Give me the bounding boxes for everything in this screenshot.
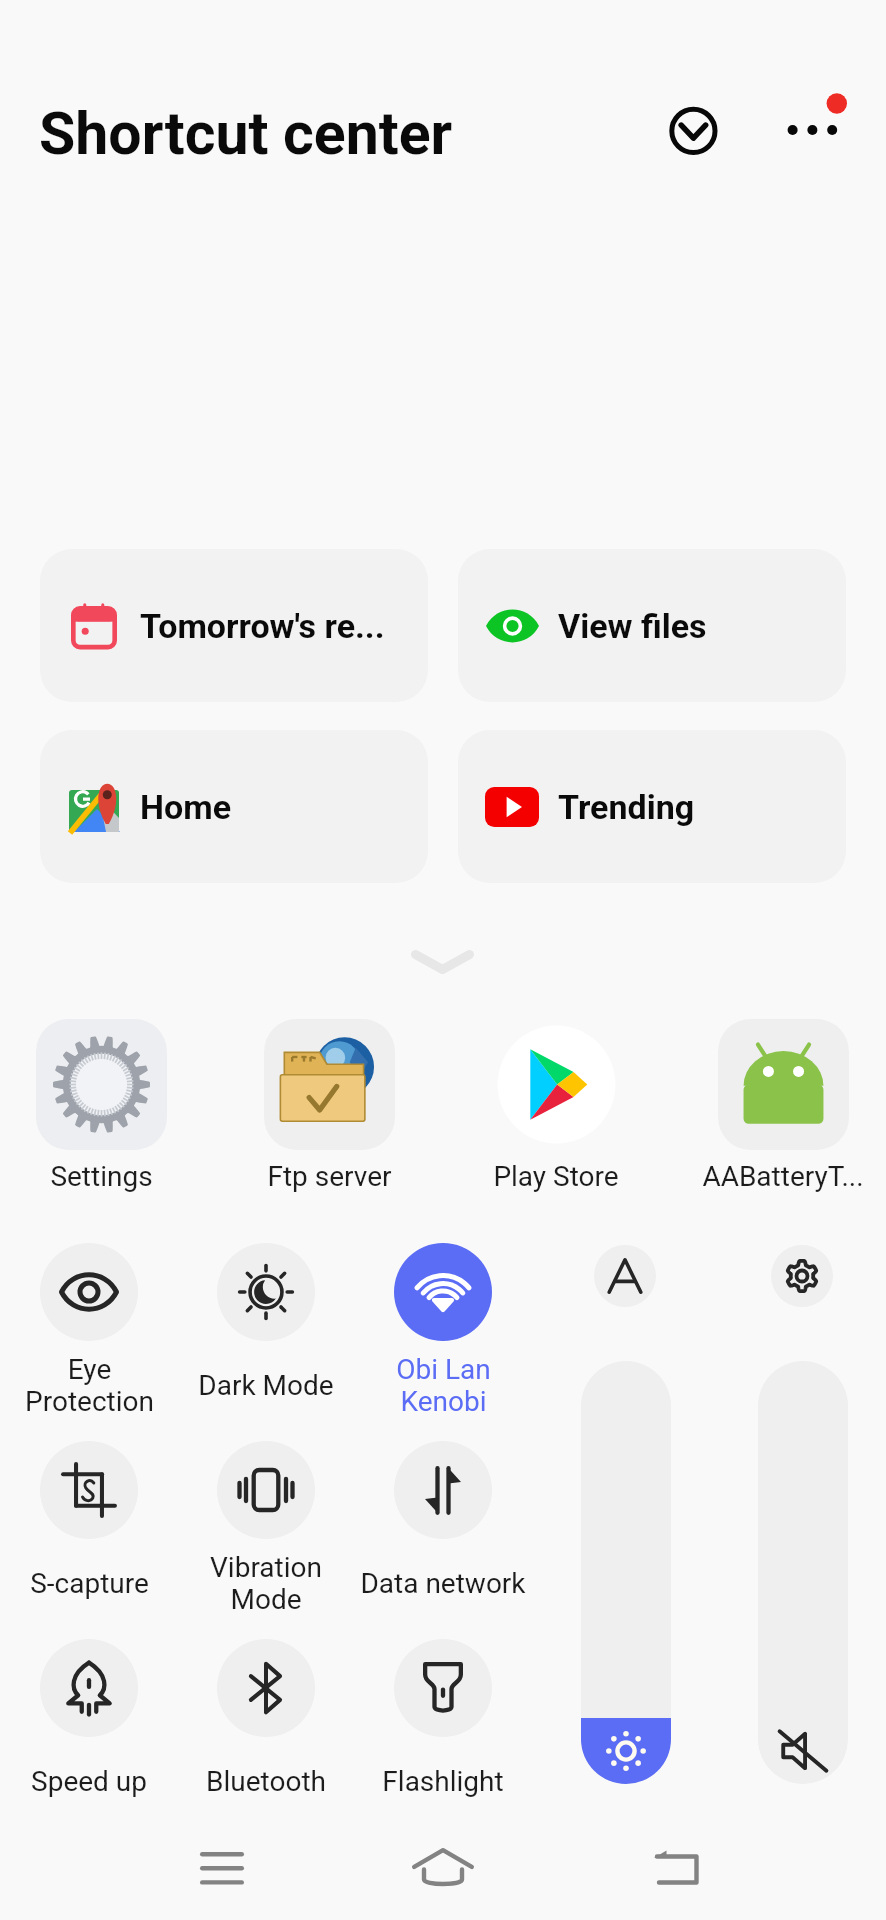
staticText: Home [140,787,232,827]
button[interactable]: Ftp server [219,1019,439,1193]
button[interactable]: Brightness [581,1361,671,1784]
button[interactable]: AABatteryT... [673,1019,886,1193]
button[interactable]: Home [40,730,428,883]
button[interactable]: Settings [0,1019,211,1193]
button[interactable]: Font size [594,1245,656,1307]
button[interactable]: Play Store [446,1019,666,1193]
button[interactable]: Volume [758,1361,848,1784]
staticText: Tomorrow's re... [140,606,385,646]
button[interactable]: Obi Lan Kenobi [353,1243,533,1409]
button[interactable]: Eye Protection [0,1243,179,1409]
button[interactable]: S-capture [0,1441,179,1607]
staticText: Vibration Mode [210,1551,322,1616]
staticText: AABatteryT... [702,1160,864,1193]
button[interactable]: Recents [172,1818,272,1918]
staticText: Settings [50,1160,153,1193]
button[interactable]: Flashlight [353,1639,533,1805]
staticText: Dark Mode [198,1369,334,1402]
staticText: Play Store [493,1160,619,1193]
staticText: Bluetooth [206,1765,326,1798]
button[interactable]: Vibration Mode [176,1441,356,1607]
staticText: Shortcut center [39,99,453,168]
button[interactable]: Bluetooth [176,1639,356,1805]
button[interactable]: Data network [353,1441,533,1607]
staticText: Speed up [31,1765,147,1798]
button[interactable]: Trending [458,730,846,883]
button[interactable]: Home [393,1818,493,1918]
staticText: S-capture [30,1567,149,1600]
staticText: Eye Protection [25,1353,154,1418]
button[interactable]: Dark Mode [176,1243,356,1409]
button[interactable]: Speed up [0,1639,179,1805]
staticText: Obi Lan Kenobi [396,1353,491,1418]
button[interactable]: Settings [771,1245,833,1307]
button[interactable]: Tomorrow's re... [40,549,428,702]
staticText: View files [558,606,707,646]
button[interactable]: View files [458,549,846,702]
staticText: Data network [360,1567,526,1600]
button[interactable]: More options [760,78,864,182]
button[interactable]: Back [626,1818,726,1918]
button[interactable]: Collapse [641,79,745,183]
staticText: Trending [558,787,695,827]
staticText: Ftp server [267,1160,392,1193]
staticText: Flashlight [382,1765,504,1798]
